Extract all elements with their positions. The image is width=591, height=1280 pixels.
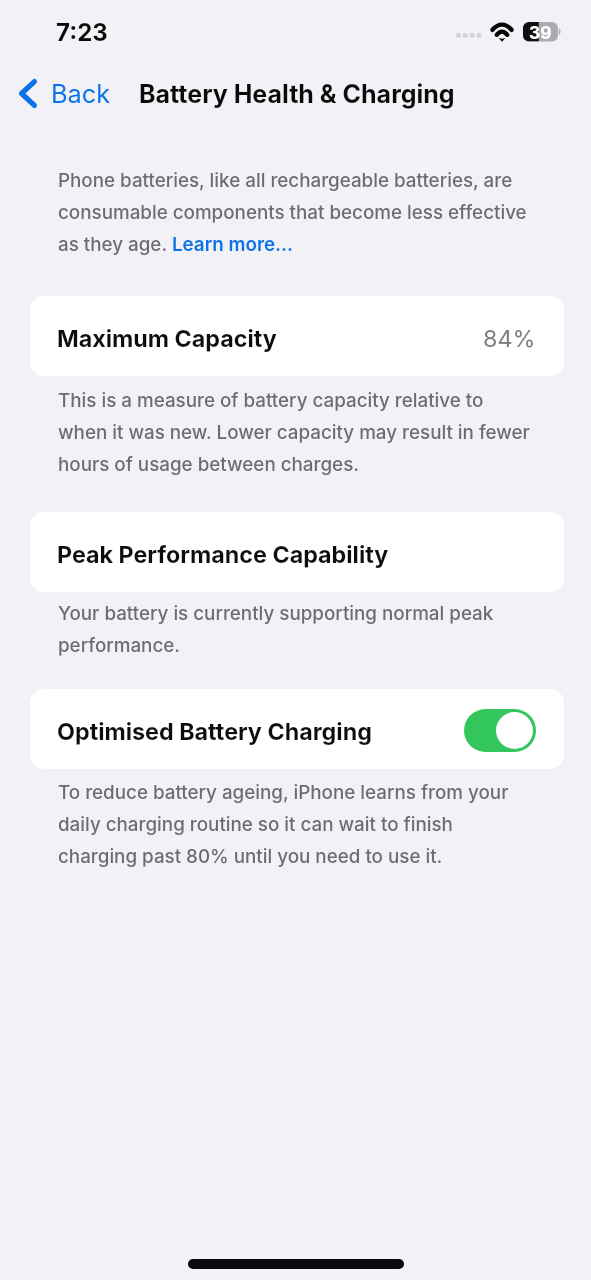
button[interactable]: Back bbox=[9, 72, 123, 115]
staticText: Back bbox=[51, 78, 111, 109]
button[interactable]: Maximum Capacity bbox=[30, 296, 564, 376]
staticText: Battery Health & Charging bbox=[139, 79, 455, 109]
button[interactable]: Peak Performance Capability bbox=[30, 512, 564, 592]
staticText: 7:23 bbox=[56, 18, 108, 47]
staticText: To reduce battery ageing, iPhone learns … bbox=[58, 773, 536, 869]
button[interactable]: Optimised Battery Charging bbox=[30, 689, 564, 769]
staticText: Phone batteries, like all rechargeable b… bbox=[58, 161, 536, 257]
staticText: Maximum Capacity bbox=[57, 324, 277, 352]
staticText: 84% bbox=[483, 324, 536, 352]
staticText: This is a measure of battery capacity re… bbox=[58, 381, 536, 477]
staticText: Peak Performance Capability bbox=[57, 540, 389, 568]
staticText: Your battery is currently supporting nor… bbox=[58, 594, 536, 658]
staticText: 39 bbox=[529, 22, 552, 42]
staticText: Optimised Battery Charging bbox=[57, 717, 372, 745]
button[interactable]: Optimised Battery Charging bbox=[464, 709, 536, 752]
